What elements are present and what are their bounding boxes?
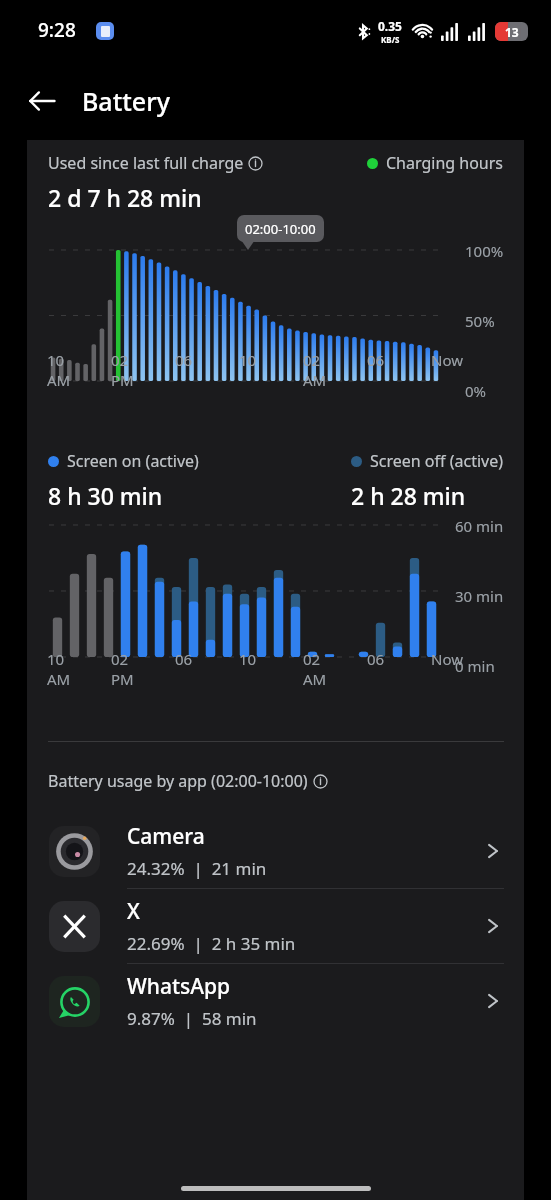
staticText: 0% [465, 381, 487, 398]
staticText: 22.69% | 2 h 35 min [127, 932, 296, 955]
staticText: 2 d 7 h 28 min [48, 182, 202, 213]
staticText: 9.87% | 58 min [127, 1007, 257, 1030]
staticText: 06 [367, 350, 385, 370]
staticText: 10 [47, 649, 65, 669]
button[interactable]: Back [18, 77, 66, 125]
staticText: 06 [175, 649, 193, 669]
staticText: Charging hours [386, 152, 504, 174]
staticText: 30 min [455, 586, 504, 606]
staticText: 60 min [455, 516, 504, 536]
staticText: AM [303, 669, 327, 689]
staticText: 10 [239, 350, 257, 370]
staticText: WhatsApp [127, 972, 230, 1001]
staticText: 9:28 [38, 17, 76, 43]
staticText: 02 [303, 649, 321, 669]
staticText: Camera [127, 822, 205, 851]
staticText: Now [431, 350, 463, 370]
button[interactable]: WhatsApp [27, 964, 524, 1038]
staticText: 02:00-10:00 [245, 220, 316, 238]
staticText: 8 h 30 min [48, 480, 163, 511]
staticText: 0.35 [378, 18, 402, 34]
staticText: 50% [465, 311, 495, 331]
staticText: AM [47, 370, 71, 390]
staticText: 0 min [455, 656, 495, 676]
staticText: AM [47, 669, 71, 689]
staticText: 2 h 28 min [351, 480, 466, 511]
staticText: Battery [82, 84, 170, 118]
staticText: 24.32% | 21 min [127, 857, 267, 880]
staticText: AM [303, 370, 327, 390]
staticText: PM [111, 370, 134, 390]
staticText: 10 [47, 350, 65, 370]
staticText: Battery usage by app (02:00-10:00) [48, 770, 308, 792]
button[interactable]: X [27, 889, 524, 964]
staticText: Now [431, 649, 463, 669]
button[interactable]: Camera [27, 814, 524, 889]
staticText: 02 [111, 649, 129, 669]
staticText: X [127, 897, 140, 926]
other: Info [248, 156, 263, 171]
staticText: 02 [111, 350, 129, 370]
other: Info [313, 774, 328, 789]
staticText: 02 [303, 350, 321, 370]
staticText: Used since last full charge [48, 152, 244, 174]
staticText: KB/S [381, 34, 400, 45]
staticText: 100% [465, 241, 504, 261]
staticText: 10 [239, 649, 257, 669]
staticText: Screen on (active) [67, 450, 199, 472]
staticText: 06 [175, 350, 193, 370]
staticText: Screen off (active) [370, 450, 504, 472]
staticText: 13 [505, 24, 519, 40]
staticText: 06 [367, 649, 385, 669]
staticText: PM [111, 669, 134, 689]
